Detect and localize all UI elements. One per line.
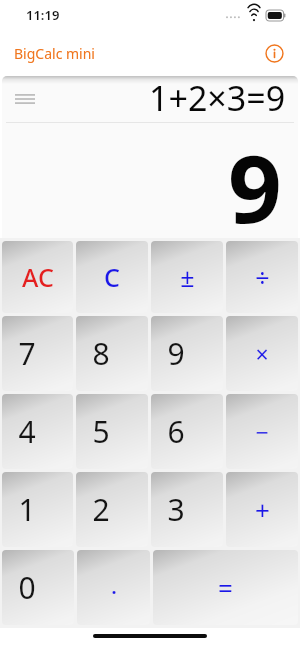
- button[interactable]: 8: [76, 316, 148, 391]
- staticText: 1+2×3=9: [149, 75, 286, 121]
- button[interactable]: 1: [2, 472, 73, 547]
- button[interactable]: AC: [2, 241, 73, 313]
- button[interactable]: 6: [151, 394, 223, 469]
- button[interactable]: =: [153, 550, 298, 625]
- staticText: =: [218, 570, 233, 605]
- staticText: 9: [228, 123, 282, 238]
- staticText: −: [255, 416, 269, 447]
- staticText: ×: [255, 338, 269, 369]
- staticText: +: [255, 492, 270, 527]
- staticText: 3: [167, 489, 185, 530]
- button[interactable]: 4: [2, 394, 73, 469]
- staticText: ±: [180, 260, 195, 294]
- button[interactable]: Menu: [10, 85, 40, 113]
- staticText: 2: [92, 489, 110, 530]
- staticText: 0: [18, 567, 36, 608]
- staticText: 11:19: [26, 6, 60, 24]
- button[interactable]: 2: [76, 472, 148, 547]
- staticText: AC: [22, 260, 54, 294]
- button[interactable]: ±: [151, 241, 223, 313]
- button[interactable]: 5: [76, 394, 148, 469]
- staticText: ÷: [255, 260, 270, 294]
- button[interactable]: −: [226, 394, 298, 469]
- staticText: 7: [18, 333, 36, 374]
- staticText: .: [111, 575, 117, 600]
- button[interactable]: 3: [151, 472, 223, 547]
- button[interactable]: .: [77, 550, 150, 625]
- staticText: C: [104, 260, 120, 294]
- button[interactable]: +: [226, 472, 298, 547]
- staticText: 4: [18, 411, 36, 452]
- button[interactable]: ×: [226, 316, 298, 391]
- button[interactable]: 0: [2, 550, 74, 625]
- button[interactable]: 7: [2, 316, 73, 391]
- staticText: 9: [167, 333, 185, 374]
- staticText: 6: [167, 411, 185, 452]
- staticText: 5: [92, 411, 110, 452]
- staticText: BigCalc mini: [14, 44, 95, 63]
- button[interactable]: 9: [151, 316, 223, 391]
- staticText: 8: [92, 333, 110, 374]
- staticText: 1: [18, 489, 36, 530]
- button[interactable]: C: [76, 241, 148, 313]
- button[interactable]: ÷: [226, 241, 298, 313]
- button[interactable]: Info: [261, 40, 287, 66]
